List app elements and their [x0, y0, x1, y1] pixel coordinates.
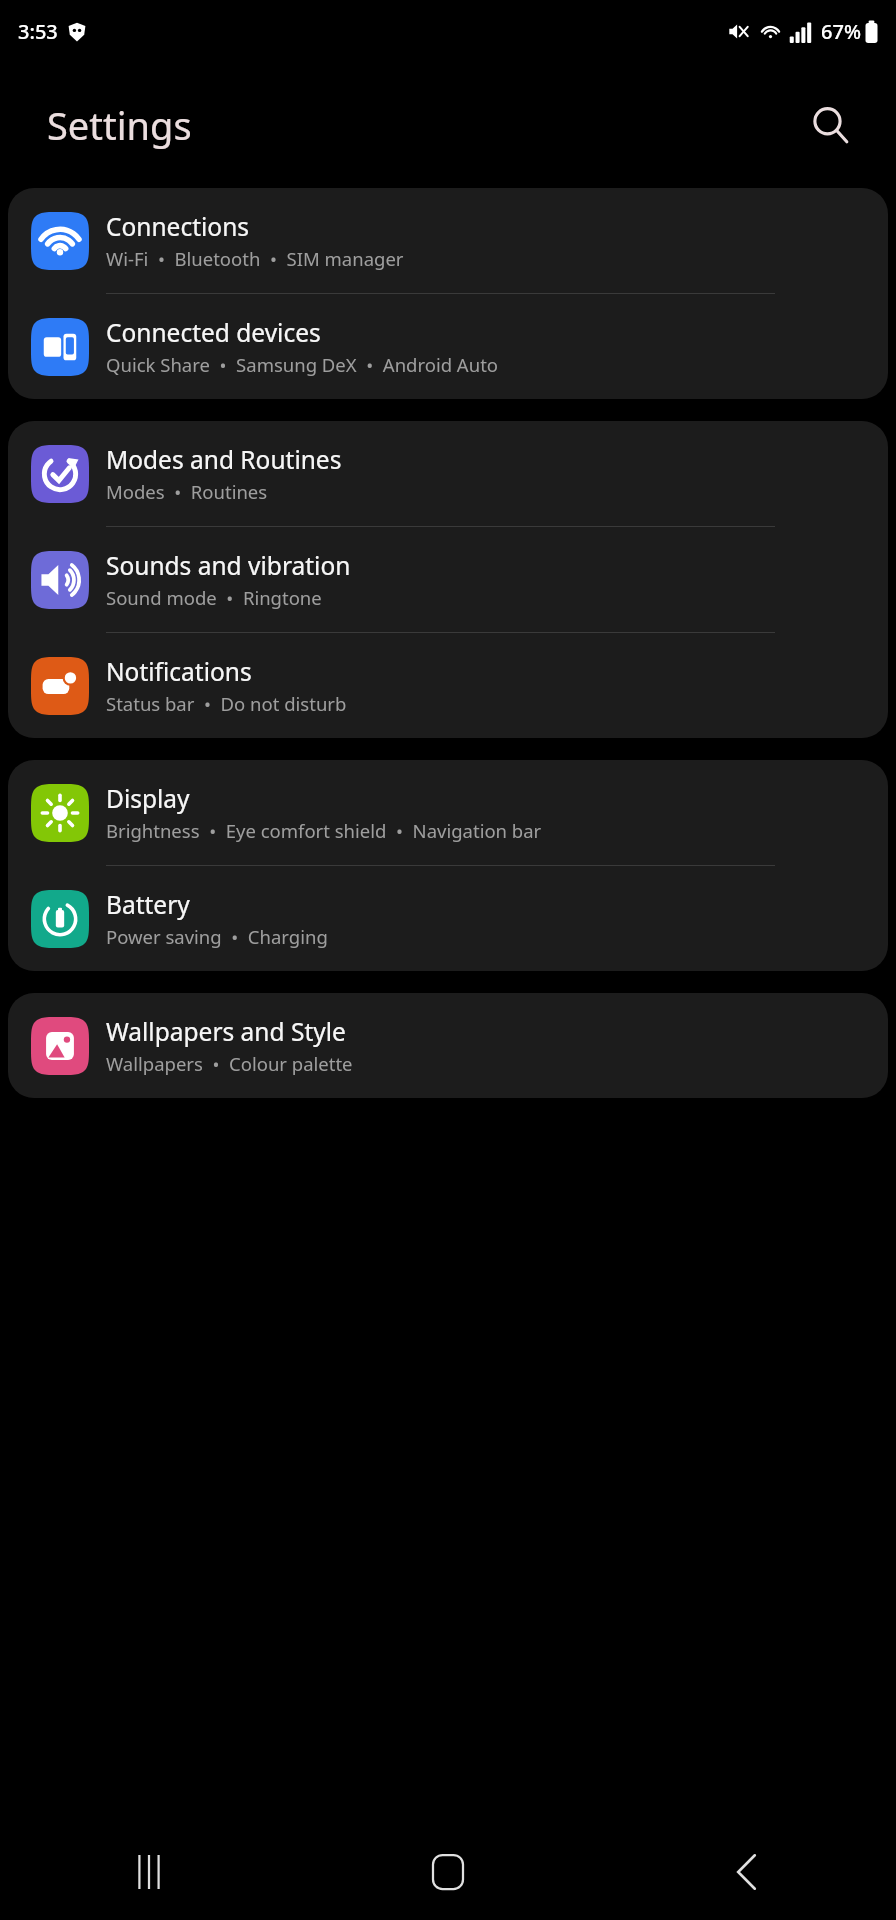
staticText: Status bar • Do not disturb	[106, 691, 347, 716]
staticText: Quick Share • Samsung DeX • Android Auto	[106, 352, 498, 377]
button[interactable]: Notifications	[8, 633, 888, 738]
staticText: Modes • Routines	[106, 479, 268, 504]
staticText: 67%	[821, 18, 861, 45]
staticText: Brightness • Eye comfort shield • Naviga…	[106, 818, 542, 843]
other: Brave	[67, 22, 87, 42]
button[interactable]: Connections	[8, 188, 888, 293]
button[interactable]: Sounds and vibration	[8, 527, 888, 632]
staticText: Modes and Routines	[106, 443, 342, 476]
staticText: Connections	[106, 210, 250, 243]
button[interactable]: Wallpapers and Style	[8, 993, 888, 1098]
button[interactable]: Battery	[8, 866, 888, 971]
staticText: Sound mode • Ringtone	[106, 585, 322, 610]
button[interactable]: Search	[794, 89, 866, 161]
staticText: Power saving • Charging	[106, 924, 328, 949]
button[interactable]: Home	[298, 1824, 597, 1920]
button[interactable]: Display	[8, 760, 888, 865]
staticText: Battery	[106, 888, 190, 921]
staticText: Wi-Fi • Bluetooth • SIM manager	[106, 246, 404, 271]
staticText: Wallpapers and Style	[106, 1015, 346, 1048]
staticText: Sounds and vibration	[106, 549, 351, 582]
button[interactable]: Recent apps	[0, 1824, 298, 1920]
button[interactable]: Back	[597, 1824, 896, 1920]
button[interactable]: Connected devices	[8, 294, 888, 399]
staticText: Notifications	[106, 655, 252, 688]
staticText: Connected devices	[106, 316, 321, 349]
staticText: Settings	[47, 99, 192, 151]
button[interactable]: Modes and Routines	[8, 421, 888, 526]
staticText: 3:53	[18, 18, 58, 45]
staticText: Display	[106, 782, 190, 815]
staticText: Wallpapers • Colour palette	[106, 1051, 353, 1076]
